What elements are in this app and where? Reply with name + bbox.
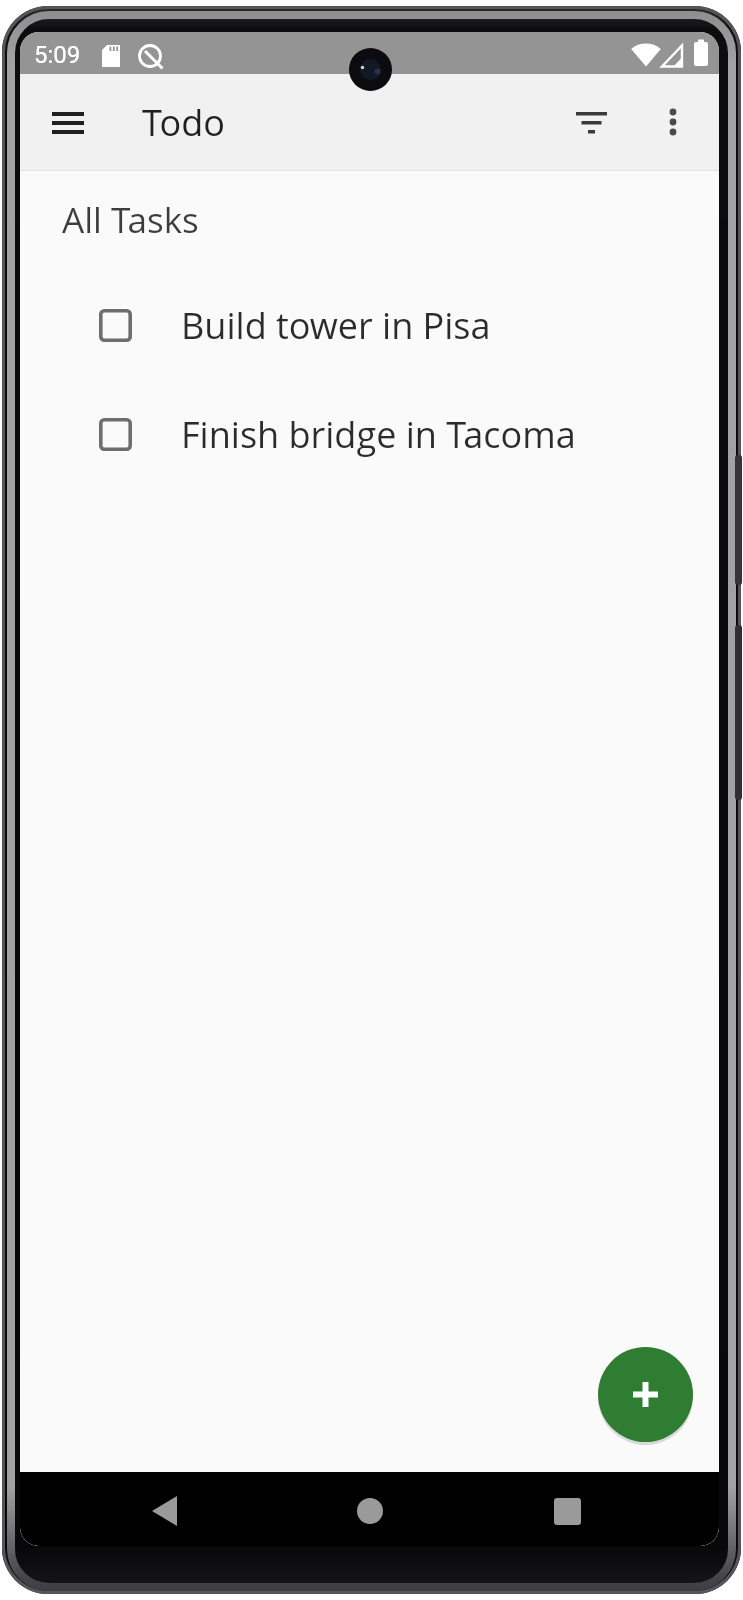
staticText: Build tower in Pisa bbox=[181, 301, 491, 350]
button[interactable] bbox=[567, 98, 615, 146]
staticText: 5:09 bbox=[34, 41, 81, 69]
button[interactable] bbox=[340, 1479, 400, 1539]
button[interactable] bbox=[598, 1347, 693, 1442]
button[interactable] bbox=[134, 1479, 194, 1539]
button[interactable] bbox=[649, 98, 697, 146]
button[interactable] bbox=[537, 1479, 597, 1539]
button[interactable] bbox=[38, 92, 98, 152]
staticText: Todo bbox=[142, 98, 225, 147]
staticText: Finish bridge in Tacoma bbox=[181, 410, 576, 459]
button[interactable]: Build tower in Pisa bbox=[20, 293, 719, 357]
button[interactable]: Finish bridge in Tacoma bbox=[20, 402, 719, 466]
staticText: All Tasks bbox=[62, 196, 199, 244]
